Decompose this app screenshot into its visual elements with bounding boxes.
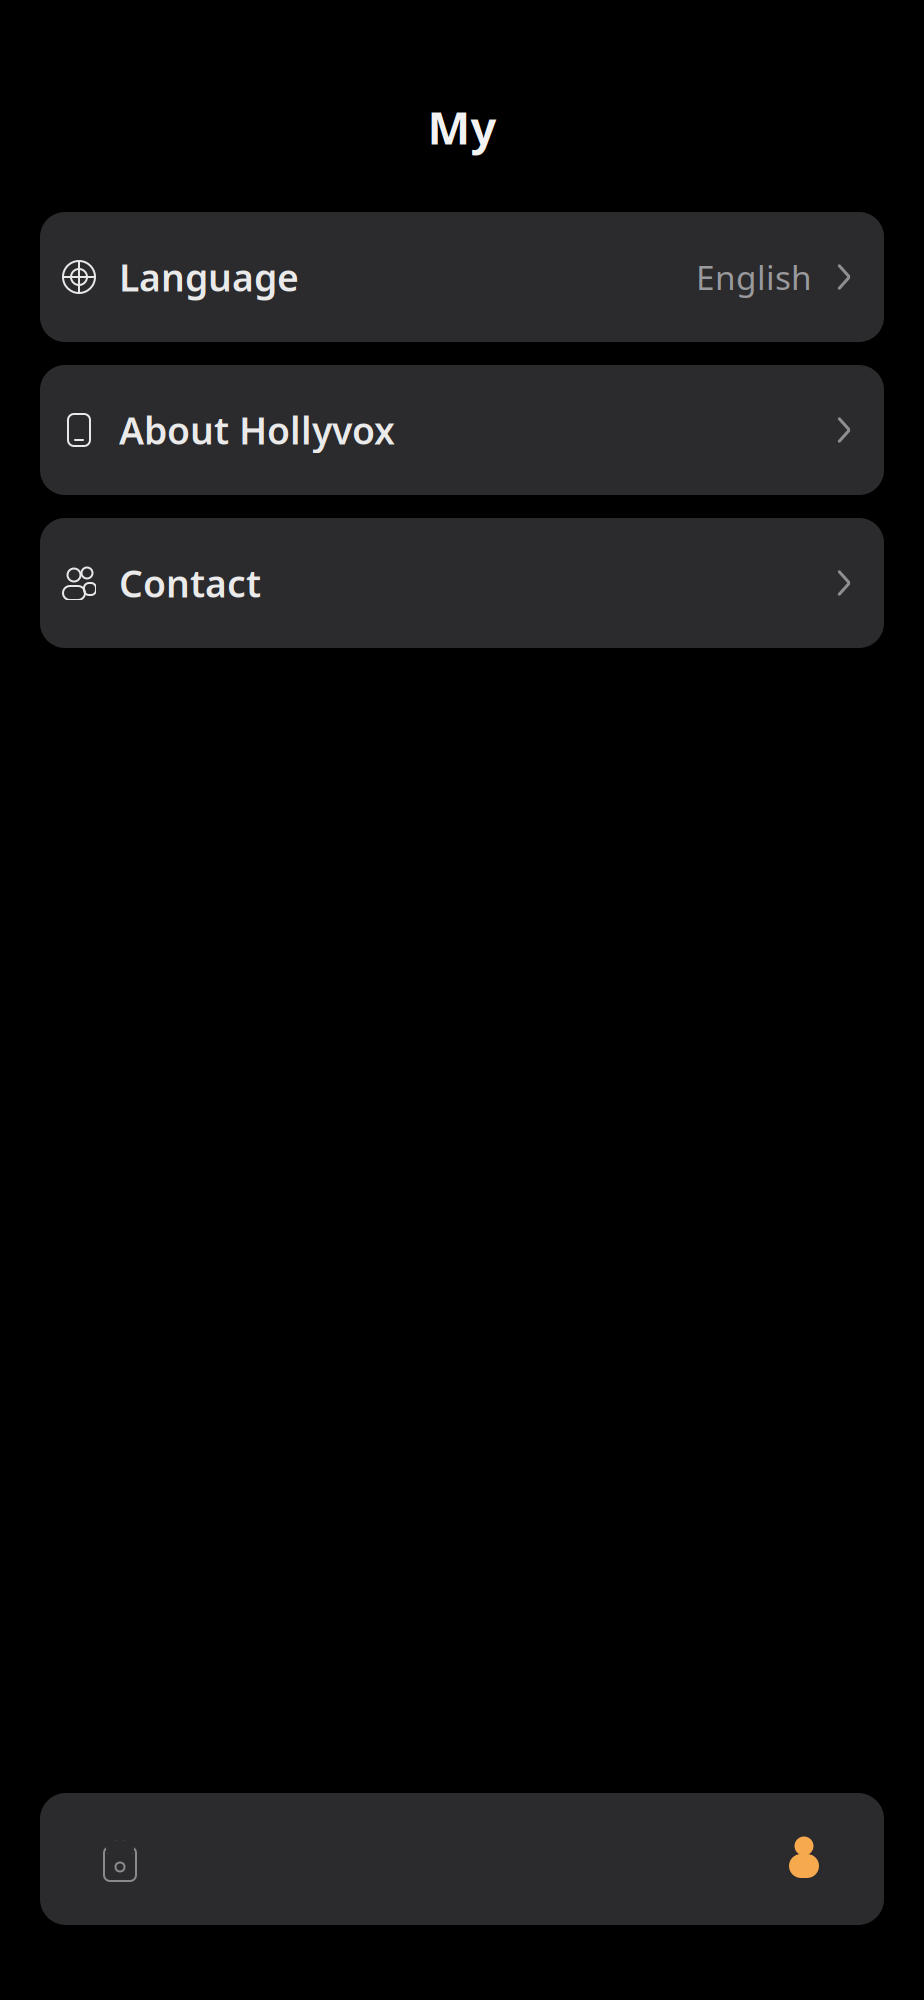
staticText: Contact xyxy=(119,558,261,608)
button[interactable]: My xyxy=(724,1793,884,1925)
staticText: My xyxy=(427,97,496,157)
staticText: Language xyxy=(119,252,299,302)
button[interactable]: Contact xyxy=(40,518,884,648)
button[interactable]: Language xyxy=(40,212,884,342)
button[interactable]: Home xyxy=(40,1793,200,1925)
staticText: English xyxy=(696,255,812,299)
button[interactable]: About Hollyvox xyxy=(40,365,884,495)
staticText: About Hollyvox xyxy=(119,405,395,455)
